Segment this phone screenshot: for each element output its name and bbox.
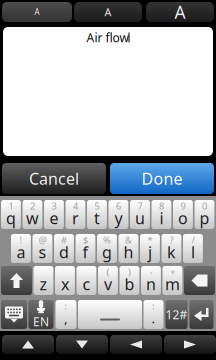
button[interactable]: Space bbox=[78, 300, 142, 329]
staticText: ( bbox=[106, 266, 109, 278]
button[interactable]: : bbox=[55, 300, 76, 329]
button[interactable]: A bbox=[74, 2, 142, 22]
staticText: m bbox=[165, 273, 180, 295]
staticText: * bbox=[147, 234, 152, 246]
staticText: p bbox=[199, 207, 209, 229]
button[interactable]: $ bbox=[75, 234, 95, 263]
button[interactable]: 4 bbox=[65, 200, 85, 229]
button[interactable]: 9 bbox=[173, 200, 193, 229]
button[interactable]: * bbox=[140, 234, 160, 263]
button[interactable]: Backspace bbox=[184, 266, 215, 295]
staticText: ! bbox=[19, 234, 22, 246]
button[interactable]: Done bbox=[110, 163, 214, 194]
button[interactable]: # bbox=[54, 234, 74, 263]
button[interactable]: ! bbox=[11, 234, 31, 263]
staticText: x bbox=[61, 273, 69, 295]
staticText: 2 bbox=[30, 200, 35, 212]
staticText: A bbox=[174, 0, 185, 23]
staticText: e bbox=[49, 207, 58, 229]
button[interactable]: ( bbox=[98, 266, 118, 295]
staticText: 0 bbox=[202, 200, 207, 212]
button[interactable]: Left bbox=[110, 335, 162, 354]
staticText: s bbox=[38, 241, 46, 263]
button[interactable]: 0 bbox=[194, 200, 214, 229]
staticText: w bbox=[26, 207, 39, 229]
staticText: Done bbox=[141, 168, 182, 189]
button[interactable]: / bbox=[183, 234, 203, 263]
button[interactable]: + bbox=[162, 266, 182, 295]
staticText: d bbox=[59, 241, 69, 263]
button[interactable]: Enter bbox=[189, 300, 213, 329]
staticText: 12# bbox=[165, 306, 187, 322]
staticText: 8 bbox=[159, 200, 164, 212]
button[interactable]: - bbox=[141, 266, 161, 295]
button[interactable]: 2 bbox=[22, 200, 42, 229]
button[interactable]: ? bbox=[161, 234, 181, 263]
staticText: ) bbox=[128, 266, 131, 278]
staticText: t bbox=[94, 207, 100, 229]
button[interactable]: Voice input bbox=[28, 300, 53, 329]
staticText: 4 bbox=[73, 200, 78, 212]
button[interactable]: & bbox=[118, 234, 138, 263]
button[interactable]: @ bbox=[32, 234, 52, 263]
staticText: z bbox=[39, 273, 47, 295]
staticText: f bbox=[82, 241, 88, 263]
button[interactable]: A bbox=[146, 0, 214, 23]
button[interactable] bbox=[76, 266, 96, 295]
button[interactable]: 1 bbox=[1, 200, 21, 229]
staticText: # bbox=[61, 234, 67, 246]
staticText: : bbox=[64, 300, 67, 312]
staticText: : bbox=[152, 300, 155, 312]
staticText: / bbox=[191, 234, 194, 246]
staticText: A bbox=[34, 7, 39, 17]
button[interactable]: Switch keyboard bbox=[1, 300, 27, 329]
staticText: u bbox=[135, 207, 145, 229]
staticText: 3 bbox=[51, 200, 56, 212]
staticText: 5 bbox=[94, 200, 99, 212]
staticText: n bbox=[146, 273, 156, 295]
button[interactable]: A bbox=[2, 2, 72, 22]
button[interactable]: 8 bbox=[151, 200, 171, 229]
staticText: b bbox=[124, 273, 134, 295]
staticText: a bbox=[16, 241, 25, 263]
button[interactable]: Cancel bbox=[2, 163, 106, 194]
staticText: . bbox=[151, 309, 155, 327]
staticText: l bbox=[191, 241, 195, 263]
button[interactable]: % bbox=[97, 234, 117, 263]
button[interactable]: ) bbox=[119, 266, 139, 295]
button[interactable]: 6 bbox=[108, 200, 128, 229]
staticText: k bbox=[167, 241, 176, 263]
button[interactable] bbox=[33, 266, 53, 295]
staticText: - bbox=[149, 266, 152, 278]
staticText: q bbox=[6, 207, 16, 229]
button[interactable]: Shift bbox=[1, 266, 32, 295]
staticText: Air flow bbox=[86, 29, 128, 45]
staticText: ? bbox=[169, 234, 173, 246]
staticText: 9 bbox=[180, 200, 185, 212]
staticText: + bbox=[170, 266, 175, 278]
staticText: % bbox=[103, 234, 111, 246]
staticText: y bbox=[114, 207, 122, 229]
button[interactable] bbox=[55, 266, 75, 295]
button[interactable]: Right bbox=[164, 335, 216, 354]
staticText: 7 bbox=[137, 200, 142, 212]
staticText: $ bbox=[83, 234, 88, 246]
staticText: j bbox=[148, 241, 152, 263]
button[interactable]: Symbols bbox=[165, 300, 187, 329]
staticText: A bbox=[104, 5, 111, 19]
staticText: o bbox=[178, 207, 188, 229]
staticText: i bbox=[159, 207, 163, 229]
staticText: @ bbox=[38, 234, 46, 246]
button[interactable]: 5 bbox=[87, 200, 107, 229]
staticText: c bbox=[82, 273, 90, 295]
staticText: 6 bbox=[116, 200, 121, 212]
button[interactable]: Down bbox=[56, 335, 108, 354]
button[interactable]: 7 bbox=[130, 200, 150, 229]
button[interactable]: 3 bbox=[44, 200, 64, 229]
button[interactable]: : bbox=[143, 300, 163, 329]
staticText: & bbox=[125, 234, 132, 246]
staticText: r bbox=[72, 207, 79, 229]
button[interactable]: Up bbox=[2, 335, 54, 354]
staticText: EN bbox=[33, 313, 49, 329]
staticText: 1 bbox=[8, 200, 13, 212]
